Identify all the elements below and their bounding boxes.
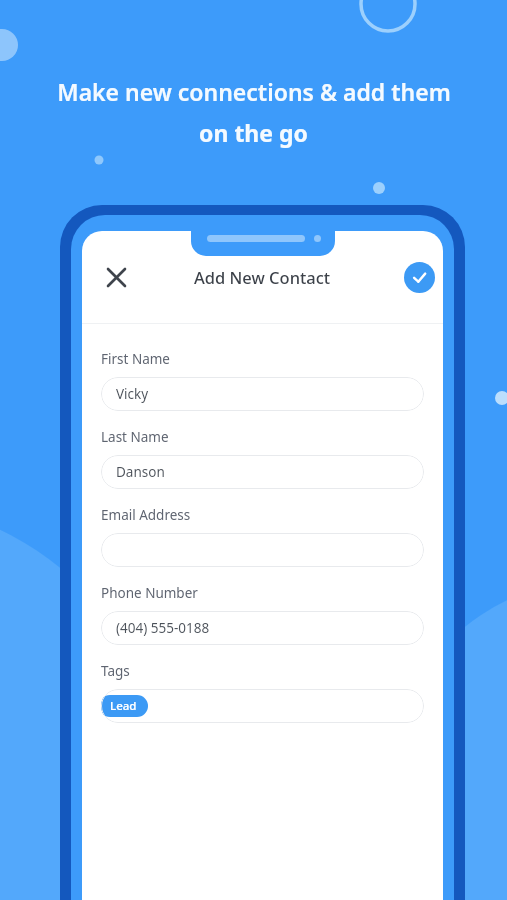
button[interactable]: (404) 555-0188 bbox=[101, 611, 424, 645]
button[interactable]: Lead bbox=[101, 689, 424, 723]
button[interactable]: Vicky bbox=[101, 377, 424, 411]
staticText: Make new connections & add them bbox=[57, 76, 451, 107]
staticText: Tags bbox=[101, 662, 130, 680]
staticText: Phone Number bbox=[101, 584, 198, 602]
staticText: Add New Contact bbox=[194, 266, 331, 288]
button[interactable] bbox=[101, 533, 424, 567]
button[interactable]: Save contact bbox=[404, 262, 435, 293]
button[interactable]: Close bbox=[94, 255, 138, 299]
staticText: Last Name bbox=[101, 428, 169, 446]
staticText: Email Address bbox=[101, 506, 191, 524]
staticText: on the go bbox=[199, 117, 308, 148]
staticText: (404) 555-0188 bbox=[116, 619, 210, 637]
staticText: Lead bbox=[110, 698, 137, 714]
staticText: Danson bbox=[116, 463, 165, 481]
staticText: First Name bbox=[101, 350, 170, 368]
button[interactable]: Danson bbox=[101, 455, 424, 489]
staticText: Vicky bbox=[116, 385, 149, 403]
button[interactable]: Lead bbox=[101, 695, 148, 717]
